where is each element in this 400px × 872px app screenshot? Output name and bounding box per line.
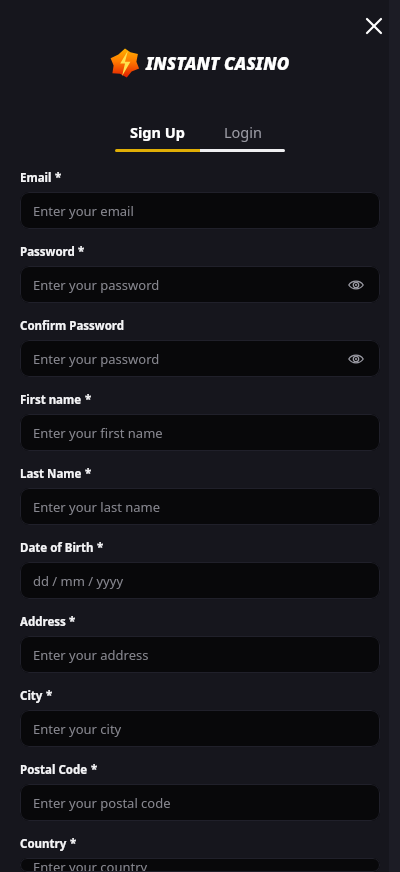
staticText: Last Name <box>20 466 82 482</box>
staticText: Enter your last name <box>33 498 161 516</box>
button[interactable]: Enter your first name <box>20 414 380 451</box>
staticText: * <box>78 244 85 260</box>
staticText: Login <box>224 122 262 142</box>
staticText: Enter your country <box>33 858 148 872</box>
button[interactable]: dd / mm / yyyy <box>20 562 380 599</box>
staticText: Enter your first name <box>33 424 163 442</box>
staticText: Enter your address <box>33 646 149 664</box>
staticText: * <box>69 614 76 630</box>
staticText: Enter your email <box>33 202 134 220</box>
staticText: Country <box>20 836 67 852</box>
button[interactable]: Sign Up <box>115 121 200 143</box>
staticText: City <box>20 688 43 704</box>
button[interactable]: Enter your last name <box>20 488 380 525</box>
staticText: dd / mm / yyyy <box>33 572 124 590</box>
button[interactable]: Enter your country <box>20 858 380 872</box>
staticText: * <box>91 762 98 778</box>
button[interactable]: Enter your city <box>20 710 380 747</box>
staticText: Enter your postal code <box>33 794 171 812</box>
button[interactable]: Close <box>359 11 389 41</box>
button[interactable]: Show password <box>345 274 367 296</box>
button[interactable]: Show password <box>345 348 367 370</box>
button[interactable]: Enter your password <box>20 266 380 303</box>
staticText: Enter your password <box>33 350 160 368</box>
staticText: Date of Birth <box>20 540 94 556</box>
staticText: * <box>46 688 53 704</box>
staticText: Email <box>20 170 52 186</box>
staticText: * <box>97 540 104 556</box>
staticText: Confirm Password <box>20 318 125 334</box>
staticText: Sign Up <box>130 122 185 142</box>
staticText: INSTANT CASINO <box>146 52 290 75</box>
staticText: Password <box>20 244 75 260</box>
staticText: * <box>85 466 92 482</box>
button[interactable]: Enter your address <box>20 636 380 673</box>
staticText: Address <box>20 614 66 630</box>
staticText: * <box>55 170 62 186</box>
button[interactable]: Enter your email <box>20 192 380 229</box>
button[interactable]: Login <box>200 121 285 143</box>
staticText: First name <box>20 392 82 408</box>
button[interactable]: Enter your password <box>20 340 380 377</box>
staticText: * <box>85 392 92 408</box>
button[interactable]: Enter your postal code <box>20 784 380 821</box>
staticText: Postal Code <box>20 762 88 778</box>
staticText: * <box>70 836 77 852</box>
staticText: Enter your city <box>33 720 122 738</box>
staticText: Enter your password <box>33 276 160 294</box>
